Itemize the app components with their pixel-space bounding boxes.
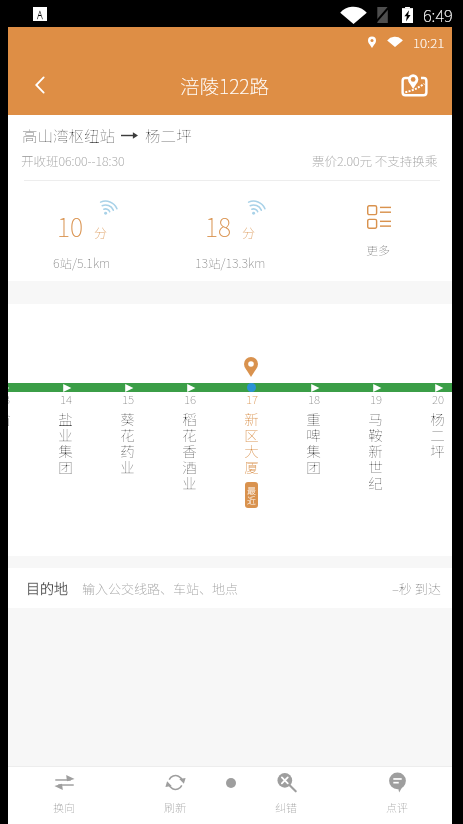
button[interactable]: 10 (8, 181, 156, 281)
staticText: 13站/13.3km (195, 253, 266, 271)
staticText: 渝 (8, 408, 11, 429)
staticText: 13 (8, 391, 10, 408)
button[interactable]: 16 (158, 304, 220, 556)
staticText: 20 (432, 391, 444, 408)
staticText: 纠错 (275, 799, 297, 815)
button[interactable]: 15 (96, 304, 158, 556)
staticText: 14 (60, 391, 72, 408)
staticText: 16 (184, 391, 196, 408)
staticText: 票价2.00元 不支持换乘 (312, 151, 438, 169)
staticText: 6站/5.1km (53, 253, 111, 271)
staticText: 重 啤 集 团 (306, 408, 321, 477)
staticText: 分 (242, 223, 256, 242)
button[interactable]: 17 (220, 304, 282, 556)
staticText: 盐 业 集 团 (58, 408, 73, 477)
button[interactable]: Map (376, 55, 452, 115)
button[interactable]: More (304, 181, 452, 281)
staticText: 点评 (386, 799, 408, 815)
button[interactable]: 纠错 (230, 767, 341, 824)
button[interactable]: 点评 (341, 767, 452, 824)
button[interactable]: 刷新 (119, 767, 230, 824)
button[interactable]: 目的地 (8, 568, 452, 608)
staticText: 分 (94, 223, 108, 242)
staticText: 10:21 (413, 32, 445, 52)
staticText: 开收班06:00--18:30 (21, 151, 125, 169)
staticText: 葵 花 药 业 (120, 408, 135, 477)
staticText: 杨 二 坪 (430, 408, 445, 461)
staticText: 目的地 (26, 578, 68, 598)
staticText: 10 (57, 208, 84, 244)
staticText: 刷新 (164, 799, 186, 815)
staticText: 高山湾枢纽站 (22, 124, 116, 146)
staticText: 马 鞍 新 世 纪 (368, 408, 383, 493)
staticText: 15 (122, 391, 134, 408)
button[interactable]: 18 (156, 181, 304, 281)
button[interactable]: 20 (406, 304, 452, 556)
button[interactable]: 13 (8, 304, 34, 556)
staticText: 稻 花 香 酒 业 (182, 408, 197, 493)
staticText: 18 (205, 208, 232, 244)
button[interactable]: 14 (34, 304, 96, 556)
staticText: 输入公交线路、车站、地点 (82, 579, 239, 598)
button[interactable]: 18 (282, 304, 344, 556)
button[interactable]: 19 (344, 304, 406, 556)
staticText: –秒 到达 (392, 579, 441, 598)
staticText: 更多 (366, 241, 391, 258)
button[interactable]: Back (8, 55, 70, 115)
staticText: 新 区 大 厦 (244, 408, 259, 477)
staticText: 6:49 (423, 3, 453, 27)
staticText: 18 (308, 391, 320, 408)
button[interactable]: 换向 (8, 767, 119, 824)
staticText: 17 (246, 391, 258, 408)
staticText: 最 近 (247, 484, 256, 506)
staticText: A (37, 7, 43, 21)
staticText: 换向 (53, 799, 75, 815)
staticText: 杨二坪 (145, 124, 192, 146)
staticText: 涪陵122路 (180, 71, 269, 99)
staticText: 19 (370, 391, 382, 408)
